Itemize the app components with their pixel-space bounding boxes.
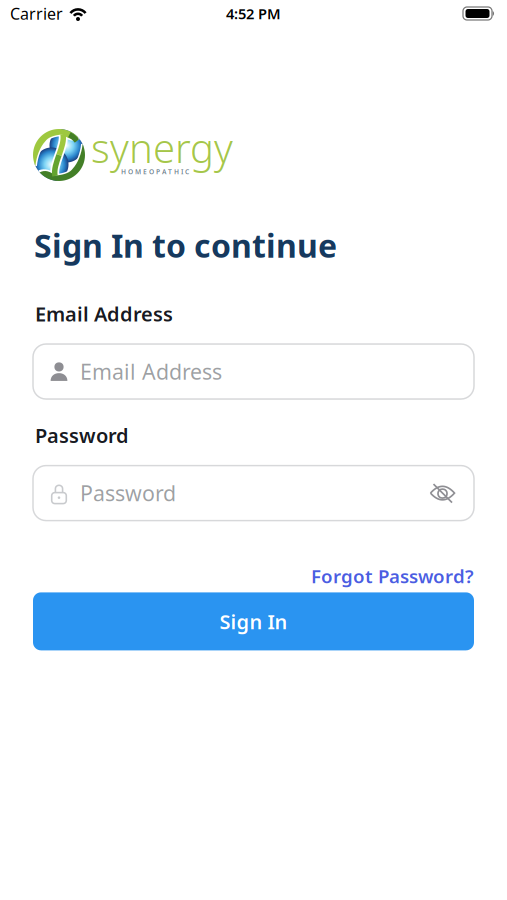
staticText: 4:52 PM (226, 4, 281, 23)
staticText: Sign In to continue (34, 224, 337, 266)
button[interactable]: Email Address (33, 344, 474, 399)
staticText: Password (35, 422, 129, 449)
staticText: Carrier (10, 3, 63, 24)
button[interactable]: Forgot Password? (311, 564, 474, 588)
staticText: synergy (91, 121, 233, 174)
staticText: Email Address (80, 357, 222, 386)
staticText: Password (80, 479, 176, 507)
staticText: Email Address (35, 300, 173, 327)
staticText: H O M E O P A T H I C (121, 167, 189, 176)
button[interactable]: Sign In (33, 592, 474, 650)
staticText: Forgot Password? (311, 564, 474, 588)
staticText: Sign In (219, 608, 287, 635)
button[interactable]: Password (33, 466, 474, 521)
